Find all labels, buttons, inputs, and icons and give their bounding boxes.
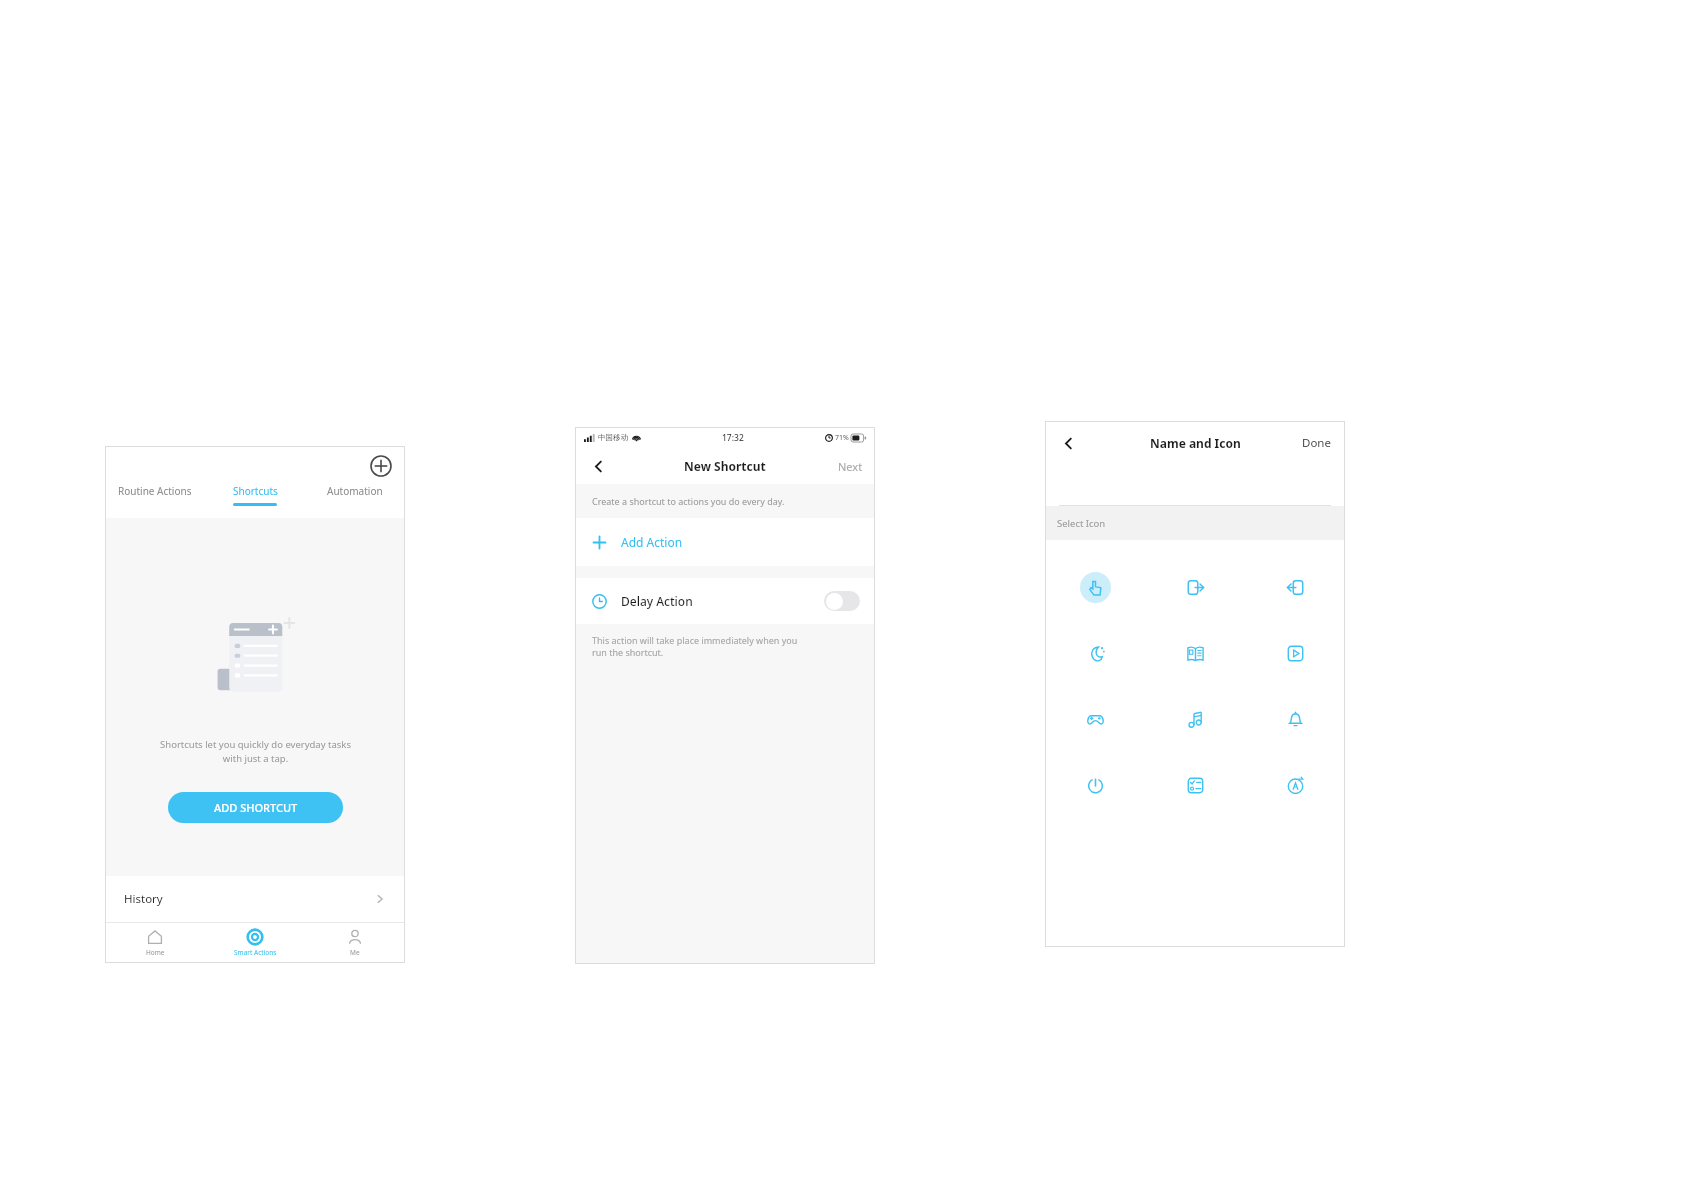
button[interactable]: Delay Action [575, 578, 875, 624]
button[interactable]: Delay Action toggle [824, 591, 860, 611]
staticText: Me [350, 948, 360, 957]
button[interactable]: Auto [1245, 752, 1345, 818]
button[interactable]: Game [1045, 686, 1145, 752]
staticText: Automation [327, 484, 383, 498]
staticText: Done [1302, 435, 1331, 451]
button[interactable]: Smart Actions [205, 923, 305, 963]
staticText: 71% [835, 433, 849, 443]
button[interactable]: Routine Actions [105, 484, 205, 518]
staticText: New Shortcut [684, 458, 766, 474]
staticText: This action will take place immediately … [592, 634, 798, 659]
button[interactable]: Music [1145, 686, 1245, 752]
button[interactable]: Back [1057, 432, 1079, 454]
button[interactable]: Read [1145, 620, 1245, 686]
button[interactable]: Power [1045, 752, 1145, 818]
button[interactable]: Alarm [1245, 686, 1345, 752]
staticText: Delay Action [621, 593, 693, 609]
button[interactable]: Automation [305, 484, 405, 518]
staticText: Shortcuts let you quickly do everyday ta… [160, 738, 351, 765]
staticText: Home [146, 948, 165, 957]
button[interactable]: Night [1045, 620, 1145, 686]
staticText: History [124, 891, 163, 907]
staticText: Shortcuts [233, 484, 278, 498]
button[interactable]: History [105, 876, 405, 922]
button[interactable]: Checklist [1145, 752, 1245, 818]
staticText: Name and Icon [1150, 435, 1241, 451]
staticText: Next [838, 459, 863, 474]
button[interactable]: Home [105, 923, 205, 963]
button[interactable]: Leave [1145, 554, 1245, 620]
button[interactable]: ADD SHORTCUT [168, 792, 343, 823]
staticText: ADD SHORTCUT [214, 800, 298, 815]
button[interactable]: Add [367, 452, 395, 480]
staticText: Routine Actions [118, 484, 192, 498]
staticText: 17:32 [722, 432, 744, 444]
button[interactable]: Done [1302, 435, 1331, 451]
button[interactable]: Shortcuts [205, 484, 305, 518]
button[interactable]: Video [1245, 620, 1345, 686]
button[interactable]: Add Action [575, 518, 875, 566]
button[interactable]: Arrive [1245, 554, 1345, 620]
staticText: Select Icon [1057, 517, 1106, 530]
button[interactable]: Next [838, 459, 863, 474]
staticText: 中国移动 [598, 433, 628, 442]
staticText: Create a shortcut to actions you do ever… [592, 495, 785, 507]
button[interactable]: Tap [1045, 554, 1145, 620]
staticText: Add Action [621, 534, 683, 550]
button[interactable]: Me [305, 923, 405, 963]
staticText: Smart Actions [234, 948, 277, 957]
button[interactable]: Back [587, 455, 609, 477]
